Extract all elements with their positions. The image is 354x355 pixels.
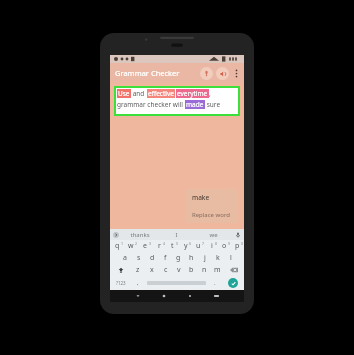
button[interactable]: g [172, 252, 185, 264]
staticText: g [176, 253, 181, 263]
staticText: s [137, 253, 141, 263]
button[interactable]: b [185, 264, 198, 276]
button[interactable]: y [179, 240, 192, 252]
button[interactable]: c [159, 264, 172, 276]
button[interactable]: Read aloud [216, 67, 229, 80]
button[interactable]: Home [151, 290, 177, 302]
staticText: Replace word [192, 211, 230, 219]
button[interactable]: s [132, 252, 146, 264]
button[interactable]: o [218, 240, 231, 252]
staticText: x [150, 265, 154, 275]
button[interactable]: Backspace [224, 264, 244, 276]
button[interactable]: a [118, 252, 132, 264]
staticText: , [137, 279, 139, 287]
staticText: m [214, 265, 221, 275]
button[interactable]: Voice typing [232, 229, 244, 240]
button[interactable]: r [152, 240, 166, 252]
button[interactable]: thanks [121, 229, 158, 240]
staticText: f [164, 253, 167, 263]
staticText: thanks [130, 231, 150, 239]
staticText: 5 [176, 241, 179, 246]
staticText: r [158, 241, 161, 251]
staticText: 2 [135, 241, 138, 246]
button[interactable]: Comma [131, 276, 144, 289]
button[interactable]: f [159, 252, 172, 264]
button[interactable]: Expand suggestions [110, 229, 121, 240]
button[interactable]: More options [231, 63, 241, 83]
button[interactable]: u [192, 240, 205, 252]
button[interactable]: Replace word [186, 206, 238, 223]
button[interactable]: d [146, 252, 159, 264]
staticText: 7 [202, 241, 205, 246]
staticText: 6 [189, 241, 192, 246]
button[interactable]: h [185, 252, 198, 264]
button[interactable]: Use [114, 86, 240, 116]
staticText: y [184, 241, 188, 251]
button[interactable]: n [198, 264, 211, 276]
button[interactable]: I [158, 229, 195, 240]
staticText: 8 [215, 241, 218, 246]
staticText: , [209, 89, 211, 98]
button[interactable]: Hide keyboard [203, 290, 229, 302]
staticText: w [128, 241, 134, 251]
button[interactable]: make [186, 189, 238, 206]
staticText: we [209, 231, 218, 239]
staticText: ?123 [116, 280, 126, 286]
staticText: I [175, 231, 178, 239]
button[interactable]: ?123 [110, 276, 131, 289]
button[interactable]: w [124, 240, 138, 252]
staticText: i [211, 241, 213, 251]
button[interactable]: j [198, 252, 211, 264]
staticText: d [150, 253, 155, 263]
staticText: t [171, 241, 174, 251]
staticText: 3 [149, 241, 152, 246]
staticText: c [164, 265, 168, 275]
staticText: sure [205, 100, 221, 109]
staticText: j [204, 253, 206, 263]
staticText: q [115, 241, 120, 251]
button[interactable]: Recent apps [177, 290, 203, 302]
button[interactable]: e [138, 240, 152, 252]
button[interactable]: we [195, 229, 232, 240]
button[interactable]: Done [221, 276, 244, 289]
button[interactable]: i [205, 240, 218, 252]
button[interactable]: v [172, 264, 185, 276]
staticText: l [230, 253, 232, 263]
button[interactable]: Voice input [200, 67, 213, 80]
button[interactable]: t [166, 240, 179, 252]
staticText: h [189, 253, 194, 263]
staticText: . [214, 279, 216, 287]
staticText: 0 [241, 241, 244, 246]
staticText: b [189, 265, 194, 275]
button[interactable]: k [211, 252, 224, 264]
staticText: k [216, 253, 220, 263]
button[interactable]: x [145, 264, 159, 276]
staticText: a [123, 253, 127, 263]
staticText: Use [118, 89, 130, 98]
staticText: grammar checker will [117, 100, 185, 109]
staticText: and [131, 89, 147, 98]
button[interactable]: Period [208, 276, 221, 289]
staticText: n [202, 265, 207, 275]
button[interactable]: p [231, 240, 244, 252]
staticText: e [143, 241, 147, 251]
staticText: everytime [177, 89, 208, 98]
button[interactable]: Shift [110, 264, 131, 276]
staticText: p [235, 241, 240, 251]
button[interactable]: m [211, 264, 224, 276]
button[interactable]: l [224, 252, 237, 264]
button[interactable]: z [131, 264, 145, 276]
staticText: 9 [228, 241, 231, 246]
staticText: Grammar Checker [115, 68, 180, 78]
button[interactable]: q [110, 240, 124, 252]
staticText: v [177, 265, 181, 275]
staticText: make [192, 193, 210, 202]
staticText: o [222, 241, 227, 251]
staticText: 4 [163, 241, 166, 246]
staticText: 1 [121, 241, 124, 246]
button[interactable] [144, 276, 208, 289]
staticText: effective [148, 89, 174, 98]
button[interactable]: Back [125, 290, 151, 302]
staticText: z [136, 265, 140, 275]
staticText: u [196, 241, 201, 251]
